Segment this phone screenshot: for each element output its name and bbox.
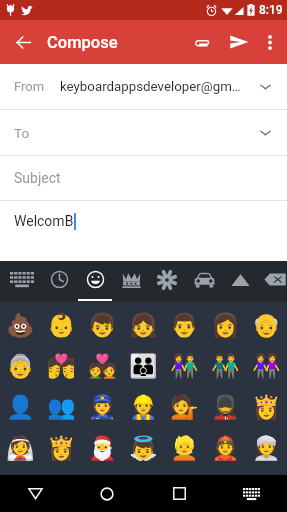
button[interactable]: Emoji (164, 387, 205, 428)
staticText: 👼 (129, 435, 158, 462)
button[interactable]: Emoji (0, 428, 41, 469)
button[interactable]: Backspace (258, 261, 287, 302)
button[interactable]: Emoji (246, 305, 287, 346)
staticText: 👰 (6, 435, 35, 462)
button[interactable]: Switch keyboard (215, 475, 287, 512)
button[interactable]: Back (0, 20, 46, 64)
staticText: 👪 (129, 353, 158, 380)
staticText: 👲 (211, 435, 240, 462)
staticText: 👶 (47, 312, 76, 339)
staticText: 💁 (170, 394, 199, 421)
button[interactable]: Emoji (123, 387, 164, 428)
staticText: 8:19 (259, 3, 283, 17)
button[interactable]: Back (0, 475, 71, 512)
button[interactable]: Objects (114, 261, 148, 302)
staticText: 👧 (129, 312, 158, 339)
staticText: From (14, 79, 45, 94)
staticText: Compose (47, 33, 118, 52)
button[interactable]: Emoji (205, 428, 246, 469)
staticText: 💏 (47, 353, 76, 380)
button[interactable]: Emoji (0, 346, 41, 387)
staticText: keyboardappsdeveloper@gm… (60, 79, 241, 95)
staticText: To (14, 125, 30, 141)
button[interactable]: Recent emoji (42, 261, 76, 302)
staticText: 👭 (252, 353, 281, 380)
button[interactable]: Emoji (123, 428, 164, 469)
button[interactable]: Emoji (82, 387, 123, 428)
button[interactable]: Emoji (205, 387, 246, 428)
button[interactable]: Emoji (0, 387, 41, 428)
button[interactable]: Emoji (164, 346, 205, 387)
button[interactable]: Emoji (0, 305, 41, 346)
button[interactable]: Emoji (41, 346, 82, 387)
button[interactable]: Nature (150, 261, 184, 302)
staticText: 💑 (88, 353, 117, 380)
staticText: 👩 (211, 312, 240, 339)
staticText: 👸 (252, 394, 281, 421)
button[interactable]: Emoji (164, 305, 205, 346)
button[interactable]: Subject (0, 156, 287, 201)
staticText: 👸 (47, 435, 76, 462)
button[interactable]: Recent apps (143, 475, 215, 512)
button[interactable]: Emoji (246, 387, 287, 428)
button[interactable]: Emoji (82, 346, 123, 387)
button[interactable]: Smileys and people (78, 261, 112, 302)
button[interactable]: To (0, 110, 287, 156)
staticText: 👨 (170, 312, 199, 339)
button[interactable]: Send (217, 20, 255, 64)
button[interactable]: Emoji (246, 346, 287, 387)
button[interactable]: Emoji (123, 305, 164, 346)
button[interactable]: Emoji (205, 346, 246, 387)
button[interactable]: From (0, 64, 287, 110)
staticText: WelcomB (14, 213, 74, 229)
button[interactable]: Emoji (123, 346, 164, 387)
staticText: 💂 (211, 394, 240, 421)
button[interactable]: Attach file (181, 20, 217, 64)
button[interactable]: Travel and places (187, 261, 221, 302)
button[interactable]: Emoji (246, 428, 287, 469)
staticText: 👥 (47, 394, 76, 421)
button[interactable]: Keyboard (5, 261, 39, 302)
button[interactable]: Emoji (82, 428, 123, 469)
button[interactable]: More options (255, 20, 287, 64)
button[interactable]: Home (71, 475, 143, 512)
button[interactable]: Emoji (82, 305, 123, 346)
button[interactable]: WelcomB (0, 201, 287, 241)
staticText: 👮 (88, 394, 117, 421)
button[interactable]: Emoji (41, 305, 82, 346)
button[interactable]: Emoji (41, 428, 82, 469)
staticText: 👷 (129, 394, 158, 421)
staticText: 👱 (170, 435, 199, 462)
staticText: Subject (14, 170, 61, 186)
button[interactable]: Emoji (205, 305, 246, 346)
button[interactable]: Emoji (164, 428, 205, 469)
staticText: 👬 (211, 353, 240, 380)
staticText: 👴 (252, 312, 281, 339)
staticText: 👳 (252, 435, 281, 462)
staticText: 👤 (6, 394, 35, 421)
button[interactable]: More (223, 261, 257, 302)
staticText: 💩 (6, 312, 35, 339)
staticText: 👦 (88, 312, 117, 339)
staticText: 👫 (170, 353, 199, 380)
button[interactable]: Emoji (41, 387, 82, 428)
staticText: 👵 (6, 353, 35, 380)
staticText: 🎅 (88, 435, 117, 462)
